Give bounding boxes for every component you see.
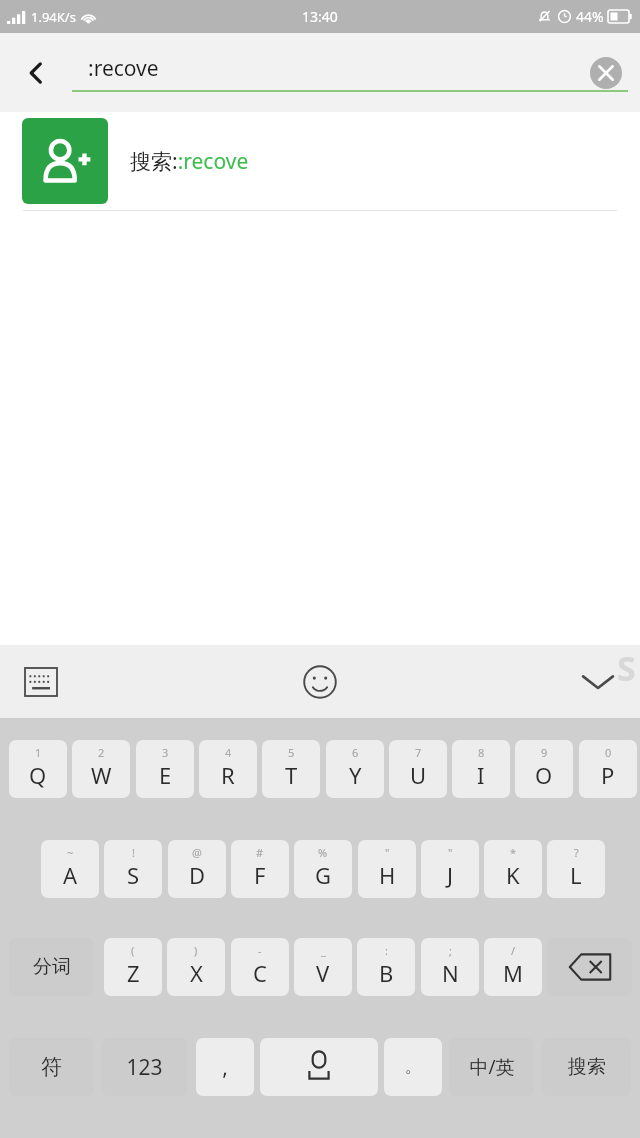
button[interactable]: 搜索::recove — [0, 112, 640, 210]
button[interactable]: 0 — [579, 740, 637, 798]
staticText: 搜索 — [568, 1055, 606, 1079]
button[interactable]: " — [358, 840, 416, 898]
button[interactable]: 6 — [326, 740, 384, 798]
button[interactable]: ; — [421, 938, 479, 996]
staticText: T — [285, 760, 298, 790]
staticText: 7 — [415, 745, 422, 760]
staticText: 6 — [352, 745, 359, 760]
button[interactable]: ( — [104, 938, 162, 996]
button[interactable]: , — [196, 1038, 254, 1096]
staticText: " — [385, 845, 390, 860]
button[interactable]: Emoji — [294, 656, 346, 708]
staticText: W — [91, 760, 112, 790]
staticText: 3 — [162, 745, 169, 760]
staticText: / — [511, 943, 516, 958]
staticText: K — [506, 860, 520, 890]
staticText: 分词 — [33, 955, 71, 979]
staticText: B — [379, 958, 394, 988]
staticText: S — [617, 645, 636, 691]
staticText: G — [315, 860, 332, 890]
staticText: S — [127, 860, 140, 890]
staticText: 4 — [225, 745, 232, 760]
staticText: 123 — [126, 1053, 163, 1082]
button[interactable]: Keyboard settings — [16, 657, 66, 707]
staticText: 。 — [405, 1057, 421, 1077]
button[interactable]: : — [357, 938, 415, 996]
staticText: 1.94K/s — [31, 8, 76, 26]
staticText: ~ — [67, 845, 74, 860]
button[interactable]: " — [421, 840, 479, 898]
button[interactable]: ? — [547, 840, 605, 898]
button[interactable]: 2 — [72, 740, 130, 798]
button[interactable]: # — [231, 840, 289, 898]
button[interactable]: * — [484, 840, 542, 898]
staticText: ? — [574, 845, 579, 860]
staticText: 搜索::recove — [130, 147, 249, 176]
button[interactable]: 8 — [452, 740, 510, 798]
button[interactable]: _ — [294, 938, 352, 996]
button[interactable]: 。 — [384, 1038, 442, 1096]
button[interactable]: Clear — [584, 51, 628, 95]
staticText: ; — [449, 943, 452, 958]
staticText: 中/英 — [469, 1054, 515, 1080]
staticText: ( — [131, 943, 135, 958]
staticText: A — [63, 860, 78, 890]
staticText: " — [448, 845, 453, 860]
button[interactable]: 搜索 — [542, 1038, 631, 1096]
staticText: :recove — [88, 54, 159, 83]
button[interactable]: 123 — [102, 1038, 187, 1096]
button[interactable]: @ — [168, 840, 226, 898]
staticText: P — [601, 760, 615, 790]
button[interactable]: ! — [104, 840, 162, 898]
button[interactable]: % — [294, 840, 352, 898]
button[interactable]: 9 — [515, 740, 573, 798]
staticText: V — [316, 958, 330, 988]
staticText: J — [447, 860, 454, 890]
button[interactable]: Voice input — [260, 1038, 378, 1096]
staticText: 2 — [98, 745, 105, 760]
button[interactable]: Back — [0, 33, 72, 112]
staticText: : — [385, 943, 388, 958]
staticText: @ — [192, 845, 202, 860]
staticText: ) — [194, 943, 198, 958]
button[interactable]: 4 — [199, 740, 257, 798]
staticText: I — [477, 760, 485, 790]
staticText: 9 — [541, 745, 548, 760]
staticText: U — [410, 760, 427, 790]
staticText: 0 — [605, 745, 612, 760]
button[interactable]: 3 — [136, 740, 194, 798]
staticText: 1 — [35, 745, 42, 760]
staticText: 8 — [478, 745, 485, 760]
staticText: 5 — [288, 745, 295, 760]
button[interactable]: Hide keyboard — [572, 656, 624, 708]
staticText: C — [253, 958, 267, 988]
button[interactable]: 7 — [389, 740, 447, 798]
staticText: X — [190, 958, 203, 988]
button[interactable]: 1 — [9, 740, 67, 798]
staticText: Y — [349, 760, 362, 790]
button[interactable]: Backspace — [547, 938, 632, 996]
staticText: , — [222, 1053, 228, 1082]
staticText: % — [318, 845, 328, 860]
staticText: L — [570, 860, 582, 890]
staticText: 符 — [41, 1054, 62, 1080]
staticText: E — [159, 760, 172, 790]
button[interactable]: - — [231, 938, 289, 996]
staticText: # — [256, 845, 264, 860]
staticText: O — [535, 760, 553, 790]
staticText: Z — [127, 958, 140, 988]
button[interactable]: / — [484, 938, 542, 996]
staticText: D — [189, 860, 206, 890]
button[interactable]: 中/英 — [449, 1038, 534, 1096]
button[interactable]: 5 — [262, 740, 320, 798]
button[interactable]: ) — [167, 938, 225, 996]
staticText: - — [258, 943, 262, 958]
staticText: H — [379, 860, 396, 890]
button[interactable]: 分词 — [9, 938, 94, 996]
button[interactable]: 符 — [9, 1038, 94, 1096]
staticText: N — [442, 958, 459, 988]
button[interactable]: ~ — [41, 840, 99, 898]
staticText: Q — [29, 760, 47, 790]
staticText: * — [510, 845, 517, 860]
staticText: ! — [132, 845, 135, 860]
